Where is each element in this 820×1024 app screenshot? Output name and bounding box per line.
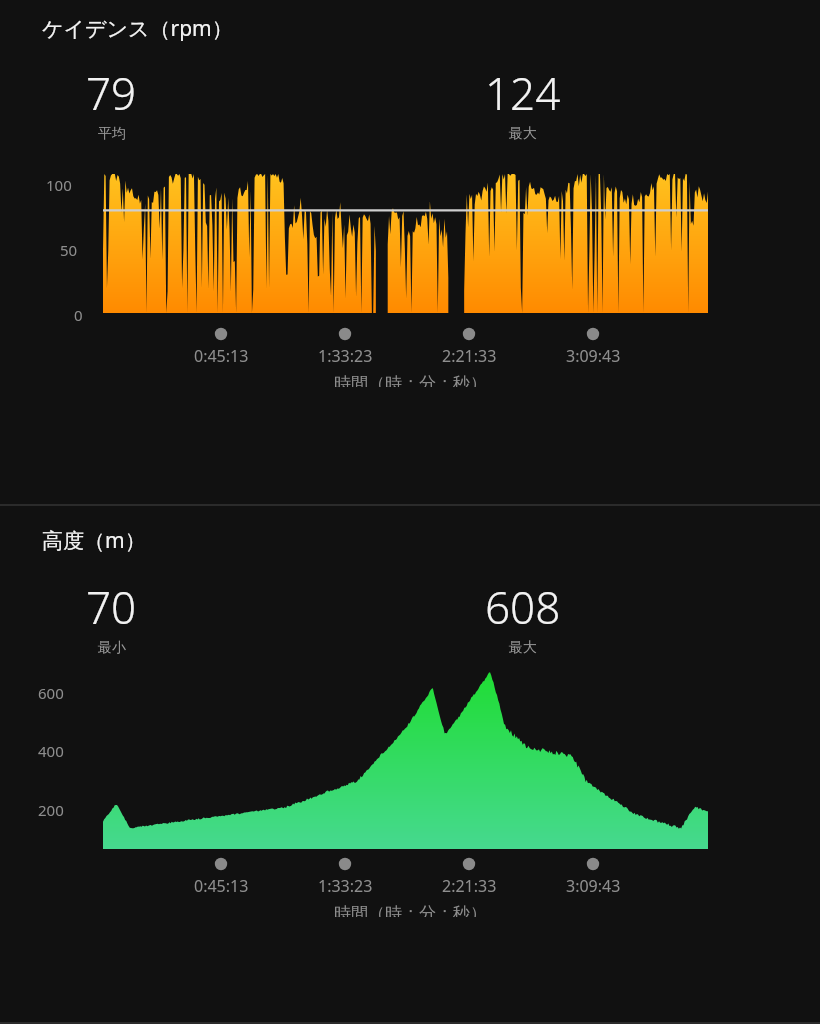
button[interactable]: 608 — [485, 577, 561, 657]
button[interactable]: 70 — [86, 577, 137, 657]
staticText: 50 — [60, 240, 78, 260]
staticText: 3:09:43 — [566, 345, 621, 367]
staticText: 0 — [74, 305, 83, 325]
staticText: 最大 — [509, 125, 537, 143]
button[interactable]: 124 — [485, 63, 561, 143]
staticText: 608 — [485, 577, 561, 637]
staticText: 1:33:23 — [318, 875, 373, 897]
staticText: 100 — [46, 175, 72, 195]
staticText: 600 — [38, 683, 64, 703]
staticText: 400 — [38, 741, 64, 761]
staticText: 200 — [38, 800, 64, 820]
staticText: 0:45:13 — [194, 875, 249, 897]
button[interactable]: 79 — [86, 63, 137, 143]
staticText: 2:21:33 — [442, 345, 497, 367]
other: Elevation chart — [0, 683, 820, 855]
staticText: 平均 — [98, 125, 126, 143]
staticText: 最大 — [509, 639, 537, 657]
staticText: 高度（m） — [42, 526, 146, 555]
staticText: 3:09:43 — [566, 875, 621, 897]
staticText: 1:33:23 — [318, 345, 373, 367]
other: Cadence chart — [0, 165, 820, 325]
staticText: 70 — [86, 577, 137, 637]
staticText: 時間（時：分：秒） — [334, 903, 487, 917]
button[interactable]: ケイデンス（rpm） — [0, 0, 820, 504]
staticText: 2:21:33 — [442, 875, 497, 897]
staticText: 79 — [86, 63, 137, 123]
staticText: 0:45:13 — [194, 345, 249, 367]
staticText: ケイデンス（rpm） — [42, 14, 233, 43]
staticText: 124 — [485, 63, 561, 123]
staticText: 時間（時：分：秒） — [334, 373, 487, 387]
button[interactable]: 高度（m） — [0, 506, 820, 1022]
staticText: 最小 — [98, 639, 126, 657]
